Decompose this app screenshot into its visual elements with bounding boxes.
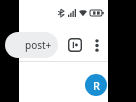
button[interactable]: More options [89,37,105,53]
staticText: R [93,78,100,93]
staticText: post+ [25,38,52,52]
button[interactable]: Account R [85,74,107,96]
button[interactable]: Display mode [67,37,83,53]
button[interactable]: post+ [5,32,58,58]
